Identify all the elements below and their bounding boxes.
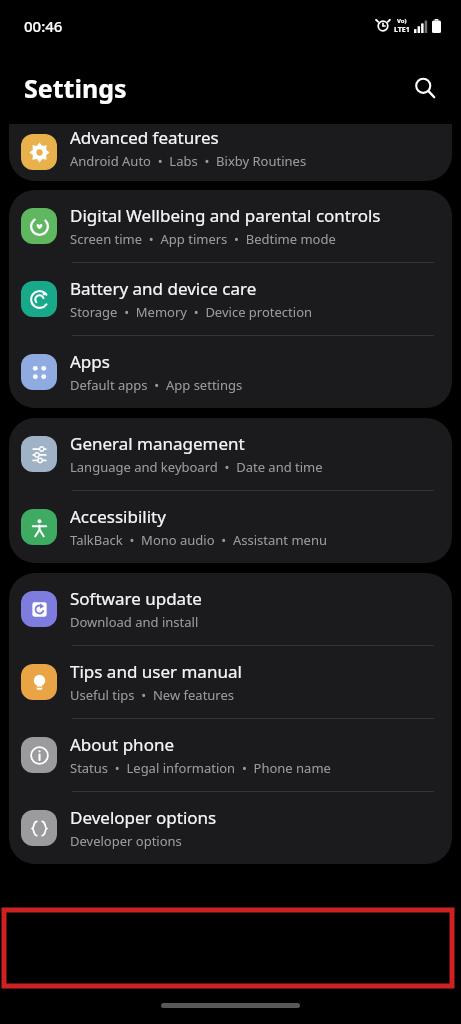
staticText: Accessibility [70,505,166,528]
button[interactable]: Tips and user manual [9,646,452,718]
staticText: Android Auto • Labs • Bixby Routines [70,152,307,170]
staticText: Software update [70,587,202,610]
staticText: Developer options [70,832,182,850]
staticText: LTE1 [394,25,410,35]
button[interactable]: Search [403,66,447,110]
button[interactable]: About phone [9,719,452,791]
staticText: General management [70,432,245,455]
button[interactable]: Developer options [9,792,452,864]
staticText: TalkBack • Mono audio • Assistant menu [70,531,327,549]
staticText: Status • Legal information • Phone name [70,759,331,777]
staticText: About phone [70,733,175,756]
staticText: Useful tips • New features [70,686,235,704]
staticText: Digital Wellbeing and parental controls [70,204,381,227]
staticText: Settings [24,71,127,105]
button[interactable]: Digital Wellbeing and parental controls [9,190,452,262]
staticText: Apps [70,350,110,373]
button[interactable]: Accessibility [9,491,452,563]
button[interactable]: Apps [9,336,452,408]
staticText: Screen time • App timers • Bedtime mode [70,230,336,248]
staticText: Storage • Memory • Device protection [70,303,313,321]
staticText: Vo) [397,17,407,25]
staticText: Default apps • App settings [70,376,243,394]
staticText: Advanced features [70,126,219,149]
button[interactable]: General management [9,418,452,490]
staticText: 00:46 [24,16,63,36]
staticText: Tips and user manual [70,660,242,683]
staticText: Developer options [70,806,217,829]
staticText: Download and install [70,613,199,631]
button[interactable]: Software update [9,573,452,645]
staticText: Language and keyboard • Date and time [70,458,323,476]
button[interactable]: Battery and device care [9,263,452,335]
button[interactable]: Advanced features [9,124,452,181]
staticText: Battery and device care [70,277,257,300]
